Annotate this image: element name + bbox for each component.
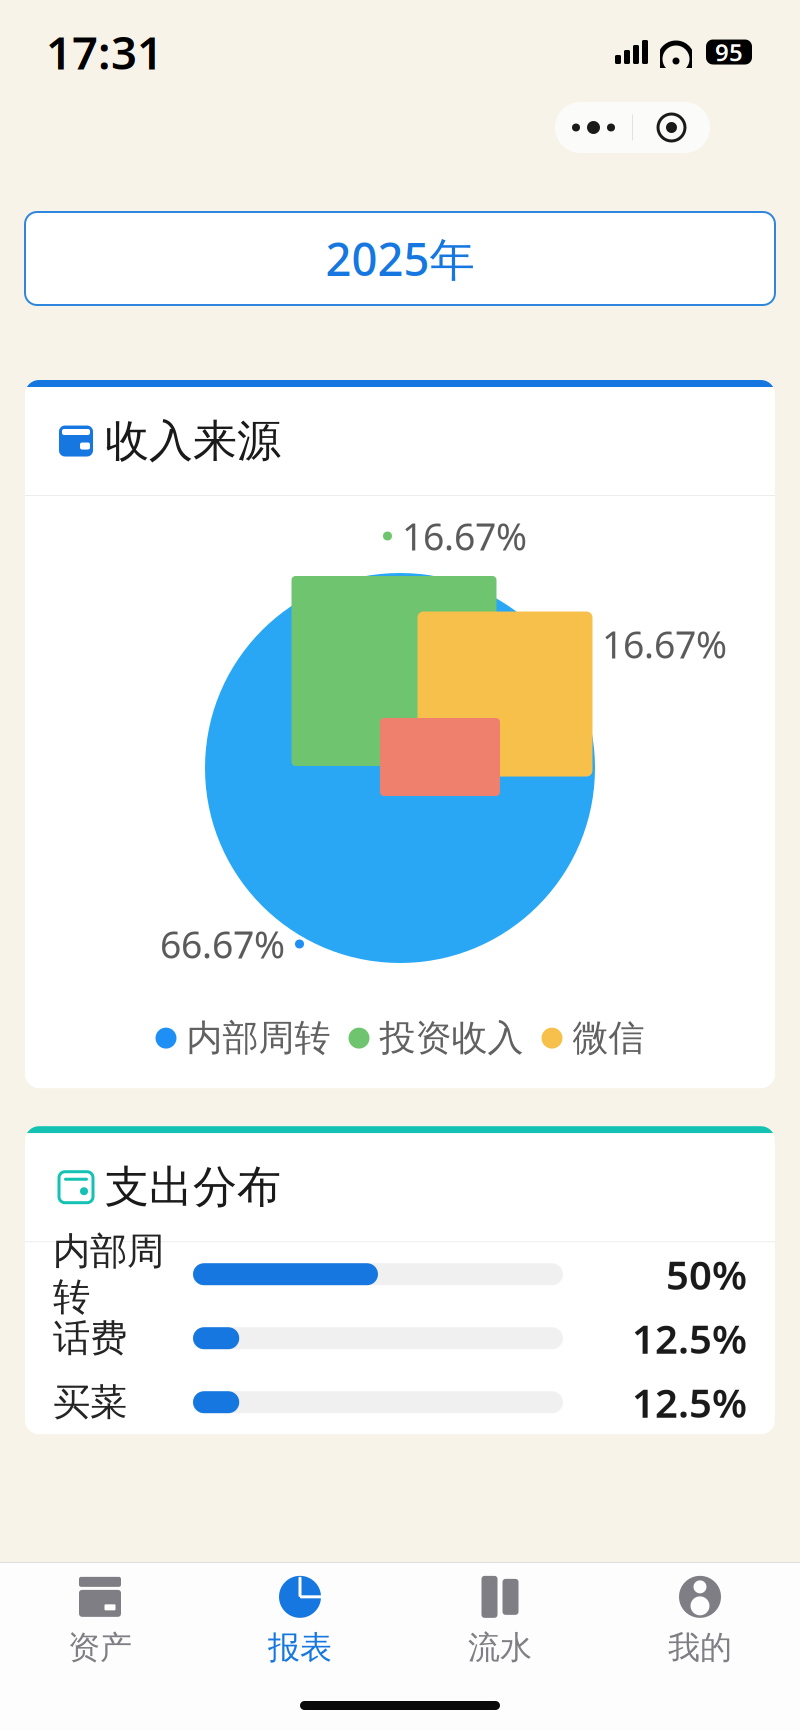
staticText: 我的 xyxy=(668,1628,732,1667)
staticText: 12.5% xyxy=(632,1312,747,1365)
staticText: 买菜 xyxy=(53,1379,127,1425)
staticText: 话费 xyxy=(53,1315,127,1361)
staticText: 投资收入 xyxy=(379,1016,523,1060)
staticText: 66.67% xyxy=(160,919,285,969)
staticText: 支出分布 xyxy=(105,1160,281,1214)
staticText: 17:31 xyxy=(46,22,163,82)
button[interactable]: Close xyxy=(633,102,710,153)
staticText: 微信 xyxy=(572,1016,644,1060)
staticText: 2025年 xyxy=(325,228,474,289)
button[interactable]: 我的 xyxy=(600,1577,800,1665)
staticText: 内部周转 xyxy=(186,1016,330,1060)
staticText: 资产 xyxy=(68,1628,132,1667)
staticText: 50% xyxy=(666,1248,747,1301)
staticText: 12.5% xyxy=(632,1376,747,1429)
staticText: 收入来源 xyxy=(105,414,281,468)
staticText: 报表 xyxy=(268,1628,332,1667)
staticText: 内部周转 xyxy=(53,1228,164,1320)
button[interactable]: 流水 xyxy=(400,1577,600,1665)
button[interactable]: 2025年 xyxy=(25,212,775,305)
button[interactable]: 资产 xyxy=(0,1577,200,1665)
staticText: 16.67% xyxy=(602,619,727,669)
staticText: 16.67% xyxy=(402,511,527,561)
button[interactable]: 报表 xyxy=(200,1577,400,1665)
button[interactable]: More xyxy=(555,102,632,153)
staticText: 95 xyxy=(715,36,743,68)
staticText: 流水 xyxy=(468,1628,532,1667)
